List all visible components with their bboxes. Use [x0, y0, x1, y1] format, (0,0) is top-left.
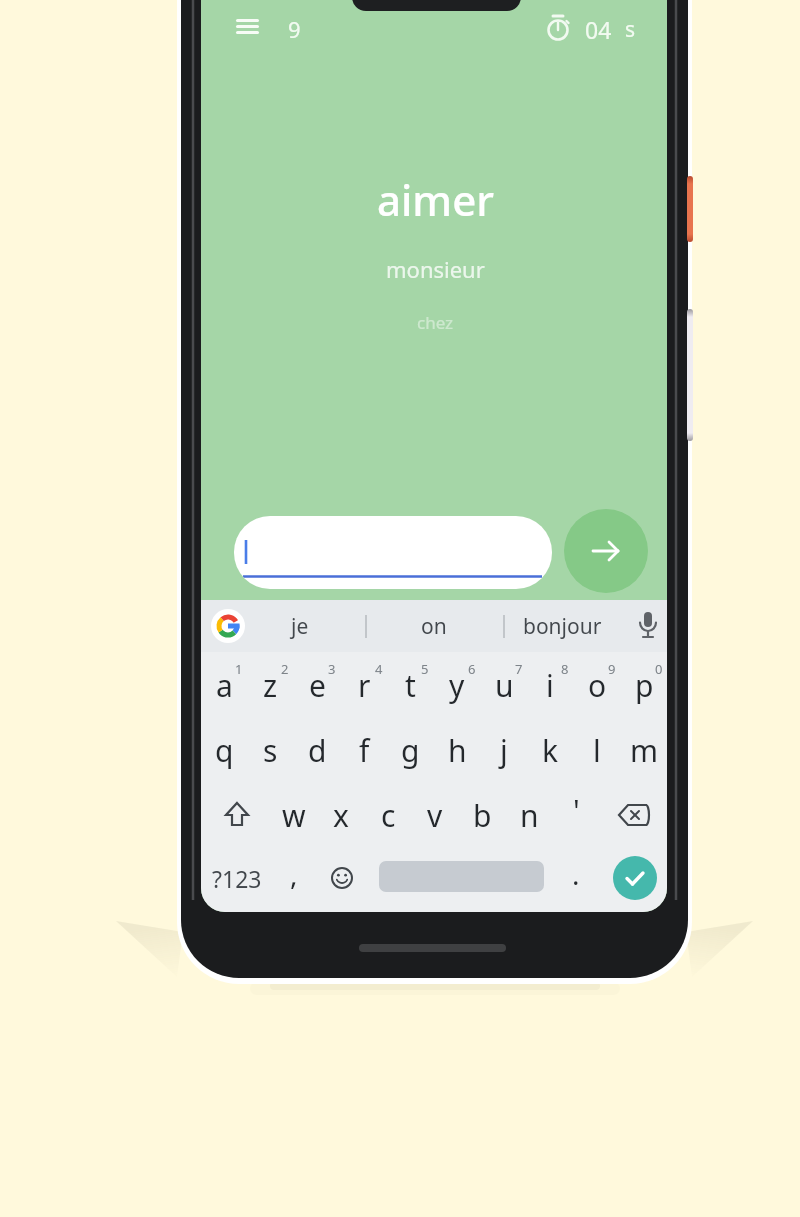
- button[interactable]: w: [272, 786, 316, 844]
- button[interactable]: [611, 800, 657, 852]
- button[interactable]: g: [388, 721, 432, 779]
- staticText: je: [291, 612, 309, 641]
- staticText: 8: [561, 660, 569, 678]
- button[interactable]: .: [558, 849, 594, 899]
- button[interactable]: x: [319, 786, 363, 844]
- staticText: p: [635, 665, 654, 706]
- staticText: h: [448, 730, 467, 771]
- button[interactable]: m: [622, 721, 666, 779]
- staticText: w: [282, 795, 306, 836]
- button[interactable]: s: [248, 721, 292, 779]
- button[interactable]: [324, 860, 360, 896]
- button[interactable]: bonjour: [507, 600, 617, 652]
- button[interactable]: j: [482, 721, 526, 779]
- staticText: a: [216, 665, 233, 706]
- staticText: g: [401, 730, 420, 771]
- staticText: 4: [375, 660, 383, 678]
- button[interactable]: o: [575, 656, 619, 714]
- button[interactable]: e: [295, 656, 339, 714]
- staticText: 7: [515, 660, 523, 678]
- staticText: r: [358, 665, 371, 706]
- button[interactable]: [234, 516, 552, 589]
- button[interactable]: r: [342, 656, 386, 714]
- button[interactable]: [633, 610, 663, 644]
- staticText: c: [381, 795, 396, 836]
- staticText: j: [500, 730, 508, 771]
- staticText: d: [308, 730, 327, 771]
- staticText: t: [405, 665, 416, 706]
- staticText: m: [630, 730, 659, 771]
- button[interactable]: p: [622, 656, 666, 714]
- button[interactable]: f: [342, 721, 386, 779]
- staticText: monsieur: [386, 254, 485, 284]
- staticText: 9: [288, 14, 301, 44]
- button[interactable]: h: [435, 721, 479, 779]
- button[interactable]: b: [460, 786, 504, 844]
- staticText: x: [333, 795, 349, 836]
- button[interactable]: q: [202, 721, 246, 779]
- staticText: b: [473, 795, 492, 836]
- staticText: ': [573, 790, 580, 831]
- button[interactable]: l: [575, 721, 619, 779]
- button[interactable]: ': [556, 785, 596, 835]
- staticText: v: [427, 795, 443, 836]
- staticText: 2: [281, 660, 289, 678]
- staticText: q: [215, 730, 234, 771]
- button[interactable]: y: [435, 656, 479, 714]
- staticText: e: [309, 665, 326, 706]
- staticText: ?123: [212, 863, 262, 894]
- staticText: 3: [328, 660, 336, 678]
- button[interactable]: c: [366, 786, 410, 844]
- staticText: bonjour: [523, 612, 602, 641]
- staticText: f: [359, 730, 370, 771]
- button[interactable]: d: [295, 721, 339, 779]
- button[interactable]: k: [528, 721, 572, 779]
- staticText: on: [421, 612, 447, 641]
- button[interactable]: [379, 861, 544, 892]
- staticText: .: [572, 855, 580, 893]
- staticText: k: [542, 730, 559, 771]
- button[interactable]: [613, 856, 657, 900]
- button[interactable]: [211, 609, 245, 643]
- staticText: chez: [417, 311, 454, 334]
- staticText: 9: [608, 660, 616, 678]
- button[interactable]: [226, 14, 270, 44]
- button[interactable]: je: [255, 600, 345, 652]
- button[interactable]: u: [482, 656, 526, 714]
- button[interactable]: on: [389, 600, 479, 652]
- button[interactable]: i: [528, 656, 572, 714]
- staticText: o: [588, 665, 607, 706]
- button[interactable]: ,: [276, 849, 312, 899]
- button[interactable]: t: [388, 656, 432, 714]
- button[interactable]: a: [202, 656, 246, 714]
- staticText: y: [449, 665, 465, 706]
- staticText: z: [263, 665, 278, 706]
- button[interactable]: [564, 509, 648, 593]
- staticText: s: [263, 730, 278, 771]
- staticText: 6: [468, 660, 476, 678]
- button[interactable]: ?123: [204, 852, 270, 904]
- staticText: ,: [290, 855, 298, 893]
- staticText: 5: [421, 660, 429, 678]
- staticText: l: [593, 730, 601, 771]
- button[interactable]: [214, 800, 260, 852]
- staticText: i: [546, 665, 554, 706]
- staticText: 1: [235, 660, 243, 678]
- staticText: 0: [655, 660, 663, 678]
- button[interactable]: v: [413, 786, 457, 844]
- staticText: u: [495, 665, 514, 706]
- button[interactable]: z: [248, 656, 292, 714]
- staticText: n: [520, 795, 539, 836]
- button[interactable]: n: [507, 786, 551, 844]
- staticText: aimer: [377, 171, 495, 228]
- staticText: s: [625, 15, 636, 44]
- staticText: 04: [585, 14, 612, 45]
